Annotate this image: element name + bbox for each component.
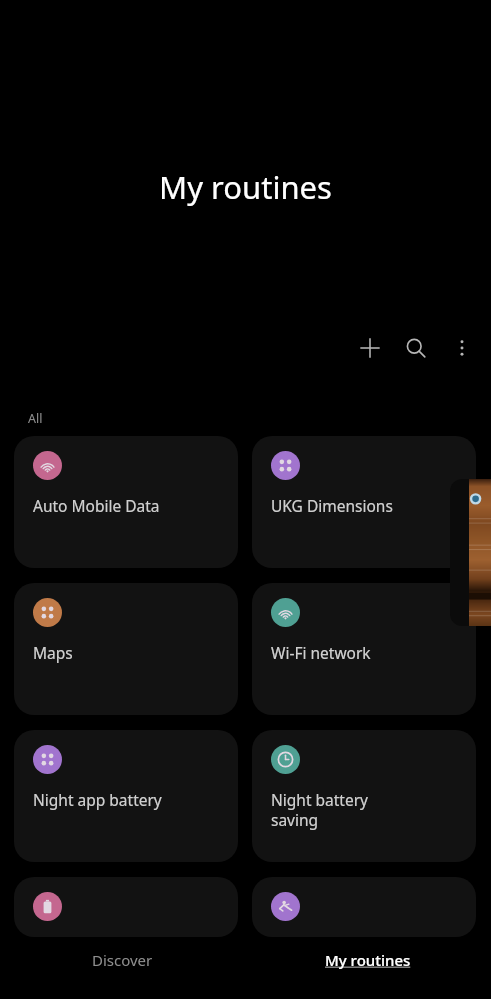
button[interactable] xyxy=(14,877,238,937)
button[interactable]: UKG Dimensions xyxy=(252,436,476,568)
staticText: Night app battery xyxy=(33,789,223,810)
staticText: Auto Mobile Data xyxy=(33,495,223,516)
staticText: Night battery saving xyxy=(271,789,461,831)
button[interactable]: Wi-Fi network xyxy=(252,583,476,715)
staticText: Wi-Fi network xyxy=(271,642,461,663)
staticText: My routines xyxy=(325,950,411,970)
button[interactable]: Discover xyxy=(0,936,245,992)
button[interactable]: Maps xyxy=(14,583,238,715)
staticText: Discover xyxy=(92,950,153,970)
staticText: Maps xyxy=(33,642,223,663)
button[interactable]: Night battery saving xyxy=(252,730,476,862)
button[interactable]: My routines xyxy=(245,936,491,992)
button[interactable]: Night app battery xyxy=(14,730,238,862)
button[interactable] xyxy=(252,877,476,937)
staticText: My routines xyxy=(0,166,491,208)
staticText: UKG Dimensions xyxy=(271,495,461,516)
staticText: All xyxy=(28,410,43,427)
button[interactable]: Add routine xyxy=(349,327,391,369)
button[interactable]: Auto Mobile Data xyxy=(14,436,238,568)
button[interactable]: More options xyxy=(441,327,483,369)
button[interactable]: Search xyxy=(395,327,437,369)
